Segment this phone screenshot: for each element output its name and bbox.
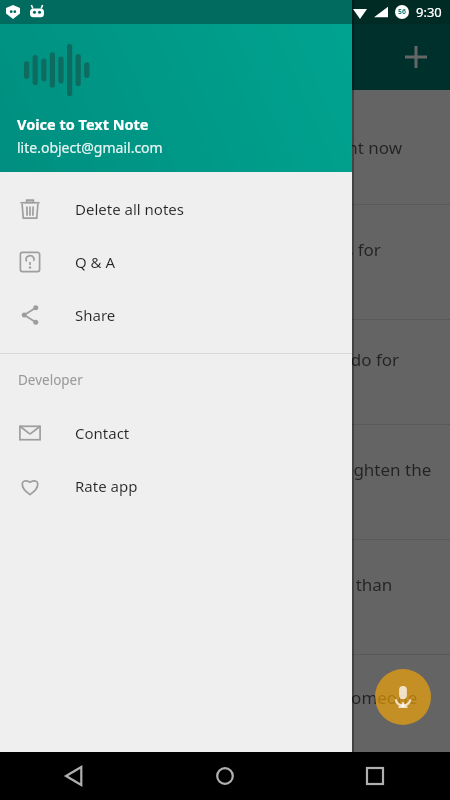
staticText: Voice to Text Note	[17, 114, 149, 134]
button[interactable]: Back	[51, 752, 99, 800]
staticText: 9:30	[416, 3, 442, 21]
staticText: Delete all notes	[75, 199, 184, 219]
button[interactable]: Sometimes the best thing you are able to…	[0, 320, 450, 425]
button[interactable]: Home	[201, 752, 249, 800]
staticText: 56	[398, 7, 407, 17]
staticText: Sometimes the best thing you are able to…	[18, 348, 432, 397]
staticText: Developer	[18, 371, 83, 389]
button[interactable]: There is no greater gift than you can of…	[0, 540, 450, 655]
staticText: Contact	[75, 423, 130, 443]
staticText: lite.object@gmail.com	[17, 138, 163, 157]
staticText: Rate app	[75, 476, 138, 496]
button[interactable]: Record voice note	[375, 669, 431, 725]
button[interactable]: Recent apps	[351, 752, 399, 800]
staticText: It is always a good thing doing nice thi…	[18, 238, 432, 287]
button[interactable]: Kindness is contagious, try being nice t…	[0, 655, 450, 765]
button[interactable]: It is always a good thing doing nice thi…	[0, 205, 450, 320]
staticText: Kindness is contagious, try being nice t…	[18, 686, 432, 735]
button[interactable]: Delete all notes	[0, 182, 352, 235]
button[interactable]: Q & A	[0, 235, 352, 288]
button[interactable]: Contact	[0, 406, 352, 459]
button[interactable]: The smallest gesture is enough to help b…	[0, 425, 450, 540]
staticText: There is no greater gift than you can of…	[18, 573, 432, 622]
staticText: Share	[75, 305, 116, 325]
button[interactable]: Share	[0, 288, 352, 341]
button[interactable]: Tap the mic button and start speaking ri…	[0, 90, 450, 205]
button[interactable]: Add note	[392, 33, 440, 81]
staticText: The smallest gesture is enough to help b…	[18, 458, 432, 507]
button[interactable]: Rate app	[0, 459, 352, 512]
staticText: Tap the mic button and start speaking ri…	[18, 136, 403, 159]
staticText: Q & A	[75, 252, 116, 272]
